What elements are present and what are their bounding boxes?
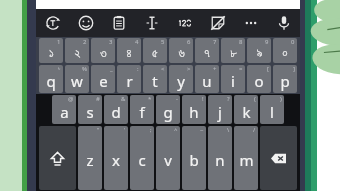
button[interactable]: ': [104, 126, 128, 190]
staticText: #: [96, 95, 100, 103]
button[interactable]: :: [117, 65, 141, 93]
staticText: o: [254, 71, 264, 91]
staticText: d: [111, 102, 121, 122]
button[interactable]: !: [182, 95, 206, 124]
button[interactable]: ": [78, 126, 102, 190]
button[interactable]: Switch language: [36, 9, 69, 37]
button[interactable]: 9: [247, 38, 271, 63]
staticText: z: [86, 150, 94, 170]
staticText: q: [46, 71, 56, 91]
staticText: ২: [74, 47, 81, 59]
staticText: ৯: [256, 47, 263, 59]
staticText: i: [231, 71, 235, 91]
staticText: &: [121, 95, 126, 103]
staticText: ৪: [126, 47, 132, 59]
staticText: ৬: [178, 47, 185, 59]
staticText: ০: [282, 47, 288, 59]
button[interactable]: \: [208, 126, 232, 190]
staticText: x: [112, 150, 120, 170]
staticText: w: [71, 71, 83, 91]
button[interactable]: 7: [195, 38, 219, 63]
button[interactable]: 0: [273, 38, 297, 63]
staticText: 8: [239, 38, 243, 46]
staticText: ^: [174, 126, 178, 134]
staticText: /: [253, 126, 256, 134]
button[interactable]: @: [52, 95, 76, 124]
staticText: !: [202, 95, 204, 103]
staticText: ': [124, 126, 126, 134]
button[interactable]: 6: [169, 38, 193, 63]
button[interactable]: -: [156, 95, 180, 124]
staticText: u: [202, 71, 212, 91]
staticText: 7: [213, 38, 217, 46]
staticText: 3: [109, 38, 113, 46]
button[interactable]: 8: [221, 38, 245, 63]
button[interactable]: /: [234, 126, 258, 190]
staticText: g: [163, 102, 173, 122]
staticText: ১: [49, 47, 54, 59]
staticText: c: [138, 150, 146, 170]
staticText: h: [189, 102, 199, 122]
staticText: ৮: [230, 47, 237, 59]
staticText: ৩: [100, 47, 107, 59]
staticText: ৳: [58, 65, 61, 71]
button[interactable]: +: [195, 65, 219, 93]
button[interactable]: *: [130, 95, 154, 124]
staticText: ): [280, 95, 282, 103]
button[interactable]: <: [143, 65, 167, 93]
button[interactable]: %: [65, 65, 89, 93]
staticText: ]: [293, 65, 295, 73]
button[interactable]: Shift: [39, 126, 76, 190]
button[interactable]: ]: [273, 65, 297, 93]
button[interactable]: 2: [65, 38, 89, 63]
staticText: _: [110, 65, 113, 73]
staticText: -: [176, 95, 178, 103]
staticText: f: [139, 102, 145, 122]
staticText: +: [213, 65, 217, 73]
button[interactable]: Text editing: [135, 9, 168, 37]
button[interactable]: Backspace: [260, 126, 297, 190]
button[interactable]: Emoji: [69, 9, 102, 37]
button[interactable]: _: [91, 65, 115, 93]
staticText: j: [218, 102, 222, 122]
staticText: r: [126, 71, 133, 91]
staticText: >: [187, 65, 191, 73]
button[interactable]: Voice input: [267, 9, 300, 37]
staticText: 1: [57, 38, 61, 46]
button[interactable]: ;: [130, 126, 154, 190]
staticText: 0: [291, 38, 295, 46]
button[interactable]: More options: [234, 9, 267, 37]
button[interactable]: 4: [117, 38, 141, 63]
button[interactable]: ~: [182, 126, 206, 190]
button[interactable]: =: [221, 65, 245, 93]
staticText: p: [280, 71, 290, 91]
button[interactable]: ^: [156, 126, 180, 190]
button[interactable]: 1: [39, 38, 63, 63]
staticText: (: [254, 95, 256, 103]
button[interactable]: 3: [91, 38, 115, 63]
button[interactable]: ৳: [39, 65, 63, 93]
button[interactable]: [: [247, 65, 271, 93]
button[interactable]: ): [260, 95, 284, 124]
button[interactable]: &: [104, 95, 128, 124]
button[interactable]: (: [234, 95, 258, 124]
staticText: l: [270, 102, 274, 122]
staticText: @: [68, 95, 74, 103]
staticText: y: [177, 71, 185, 91]
button[interactable]: ?: [208, 95, 232, 124]
staticText: t: [152, 71, 158, 91]
button[interactable]: >: [169, 65, 193, 93]
button[interactable]: 5: [143, 38, 167, 63]
staticText: ৫: [152, 47, 158, 59]
button[interactable]: Clipboard: [102, 9, 135, 37]
staticText: s: [86, 102, 94, 122]
button[interactable]: Numbers: [168, 9, 201, 37]
staticText: ?: [227, 95, 230, 103]
button[interactable]: Stickers off: [201, 9, 234, 37]
staticText: %: [82, 65, 87, 73]
staticText: *: [148, 95, 152, 103]
staticText: e: [99, 71, 108, 91]
button[interactable]: #: [78, 95, 102, 124]
staticText: :: [137, 65, 139, 73]
staticText: a: [60, 102, 69, 122]
